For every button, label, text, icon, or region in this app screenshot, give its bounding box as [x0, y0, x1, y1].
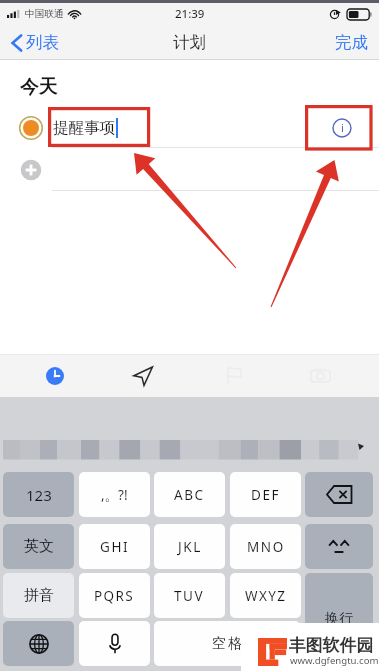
- button[interactable]: PQRS: [79, 573, 150, 618]
- button[interactable]: 换行: [305, 573, 373, 664]
- button[interactable]: Remind me at a time: [33, 354, 77, 397]
- button[interactable]: Dictation: [79, 621, 150, 666]
- button[interactable]: WXYZ: [230, 573, 301, 618]
- staticText: MNO: [247, 538, 285, 556]
- staticText: 丰图软件园: [289, 635, 373, 656]
- staticText: i: [341, 120, 344, 136]
- staticText: 中国联通: [25, 8, 64, 20]
- staticText: 空格: [211, 635, 243, 653]
- button[interactable]: JKL: [154, 524, 225, 569]
- button[interactable]: DEF: [230, 472, 301, 517]
- staticText: 拼音: [24, 586, 54, 605]
- button[interactable]: ABC: [154, 472, 225, 517]
- button[interactable]: Details: [331, 117, 353, 139]
- staticText: www.dgfengtu.com: [290, 654, 379, 667]
- staticText: 计划: [173, 32, 206, 53]
- button[interactable]: 列表: [0, 32, 65, 53]
- button[interactable]: 英文: [3, 524, 74, 569]
- button[interactable]: 完成: [325, 32, 379, 53]
- staticText: 完成: [335, 32, 368, 53]
- button[interactable]: GHI: [79, 524, 150, 569]
- button[interactable]: 提醒事项: [0, 107, 379, 148]
- staticText: 提醒事项: [53, 118, 116, 138]
- staticText: 今天: [20, 75, 57, 98]
- button[interactable]: ,。?!: [79, 472, 150, 517]
- staticText: PQRS: [94, 587, 135, 605]
- button[interactable]: Remind me at a location: [121, 354, 165, 397]
- button[interactable]: [0, 148, 379, 191]
- button[interactable]: Switch keyboard: [3, 621, 74, 666]
- button[interactable]: 拼音: [3, 573, 74, 618]
- staticText: 21:39: [175, 6, 205, 22]
- staticText: JKL: [178, 538, 202, 556]
- button[interactable]: TUV: [154, 573, 225, 618]
- button[interactable]: 空格: [154, 621, 300, 666]
- staticText: TUV: [174, 587, 205, 605]
- staticText: GHI: [100, 538, 130, 556]
- staticText: DEF: [251, 486, 281, 504]
- button[interactable]: Emoticons: [305, 524, 373, 569]
- staticText: WXYZ: [245, 587, 287, 605]
- button[interactable]: 123: [3, 472, 74, 517]
- staticText: 换行: [325, 610, 353, 628]
- button[interactable]: MNO: [230, 524, 301, 569]
- staticText: 123: [26, 485, 52, 505]
- staticText: 英文: [24, 537, 54, 556]
- staticText: 列表: [26, 32, 59, 53]
- button[interactable]: Delete: [305, 472, 373, 517]
- staticText: ABC: [174, 486, 205, 504]
- staticText: ,。?!: [101, 486, 128, 504]
